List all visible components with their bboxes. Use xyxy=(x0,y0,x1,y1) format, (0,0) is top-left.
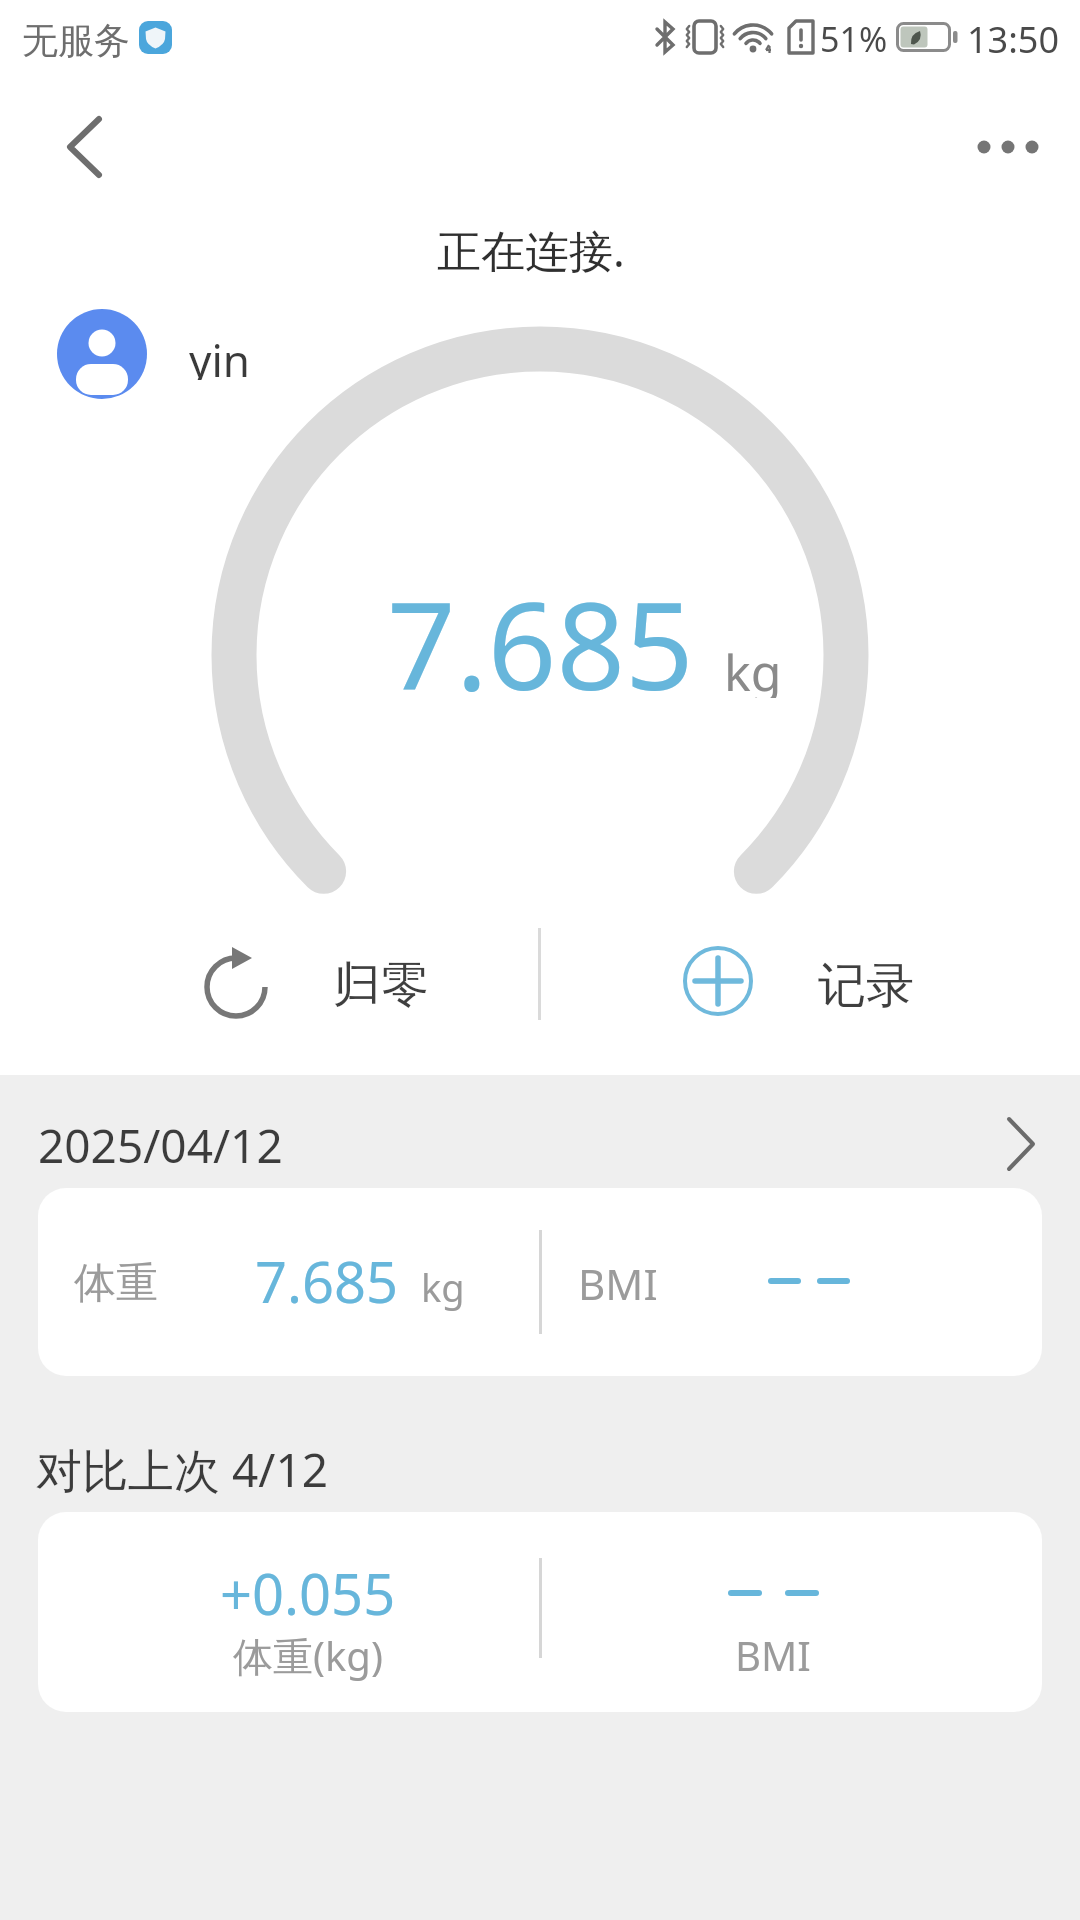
staticText: 体重(kg) xyxy=(233,1628,383,1683)
staticText: yin xyxy=(189,330,250,380)
staticText: 7.685 xyxy=(387,562,694,702)
staticText: BMI xyxy=(735,1628,811,1682)
staticText: +0.055 xyxy=(220,1555,396,1631)
staticText: kg xyxy=(724,638,782,698)
staticText: 归零 xyxy=(333,955,429,1015)
button[interactable]: 记录 xyxy=(678,941,928,1021)
staticText: 13:50 xyxy=(967,15,1060,59)
staticText: BMI xyxy=(578,1255,658,1312)
button[interactable] xyxy=(57,309,147,399)
button[interactable] xyxy=(30,102,140,192)
staticText: 记录 xyxy=(818,956,914,1016)
button[interactable]: 归零 xyxy=(196,944,446,1024)
staticText: 对比上次 4/12 xyxy=(36,1438,329,1501)
button[interactable] xyxy=(955,112,1055,182)
staticText: 正在连接. xyxy=(437,220,625,274)
staticText: 体重 xyxy=(74,1257,158,1310)
button[interactable]: 2025/04/12 xyxy=(0,1106,1080,1182)
staticText: 2025/04/12 xyxy=(38,1114,283,1177)
button[interactable]: +0.055 xyxy=(38,1512,1042,1712)
staticText: 无服务 xyxy=(22,18,130,58)
staticText: kg xyxy=(421,1261,465,1313)
staticText: 51% xyxy=(820,16,888,58)
staticText: 7.685 xyxy=(255,1243,399,1319)
button[interactable]: 体重 xyxy=(38,1188,1042,1376)
